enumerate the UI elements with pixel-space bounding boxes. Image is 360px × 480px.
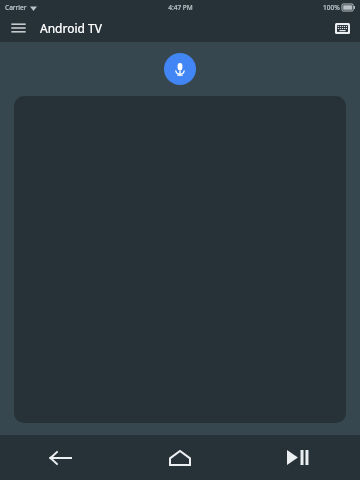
staticText: Android TV [40, 20, 102, 36]
staticText: 4:47 PM [168, 3, 193, 12]
button[interactable]: Menu [4, 14, 32, 42]
staticText: 100% [323, 3, 340, 12]
button[interactable]: Voice search [164, 53, 196, 85]
button[interactable]: Home [120, 435, 240, 480]
staticText: Carrier [5, 3, 27, 12]
button[interactable]: Back [0, 435, 120, 480]
button[interactable]: Play or pause [240, 435, 360, 480]
button[interactable]: Keyboard [328, 14, 356, 42]
